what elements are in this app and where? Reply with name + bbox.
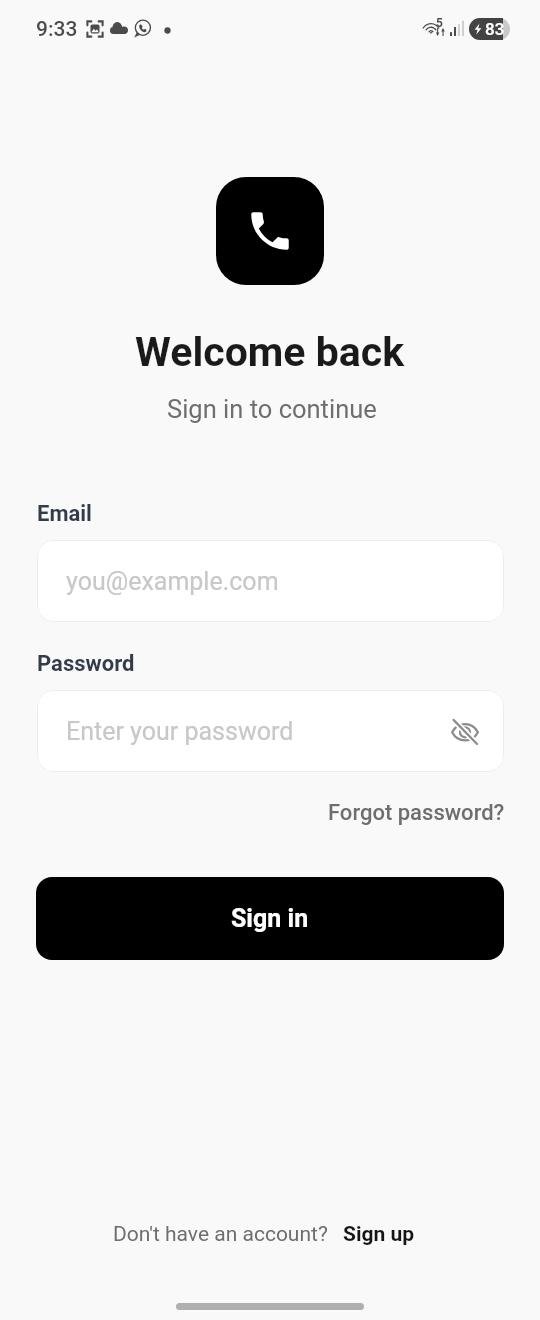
- button[interactable]: you@example.com: [37, 540, 504, 622]
- staticText: Sign in: [231, 904, 309, 933]
- staticText: Enter your password: [66, 717, 294, 746]
- staticText: Sign up: [343, 1222, 415, 1247]
- staticText: you@example.com: [66, 567, 279, 596]
- button[interactable]: Forgot password?: [324, 796, 509, 830]
- button[interactable]: Sign up: [343, 1222, 415, 1247]
- staticText: Sign in to continue: [167, 394, 377, 424]
- staticText: Don't have an account?: [113, 1222, 328, 1247]
- button[interactable]: Sign in: [36, 877, 504, 960]
- button[interactable]: Show password: [440, 706, 490, 756]
- staticText: 9:33: [36, 17, 78, 42]
- staticText: 83: [485, 19, 505, 39]
- staticText: Forgot password?: [328, 800, 505, 826]
- staticText: 5: [436, 16, 443, 30]
- staticText: Password: [37, 651, 135, 677]
- staticText: Welcome back: [135, 328, 405, 376]
- button[interactable]: Enter your password: [37, 690, 504, 772]
- other: App logo: [216, 177, 324, 285]
- staticText: Email: [37, 501, 92, 527]
